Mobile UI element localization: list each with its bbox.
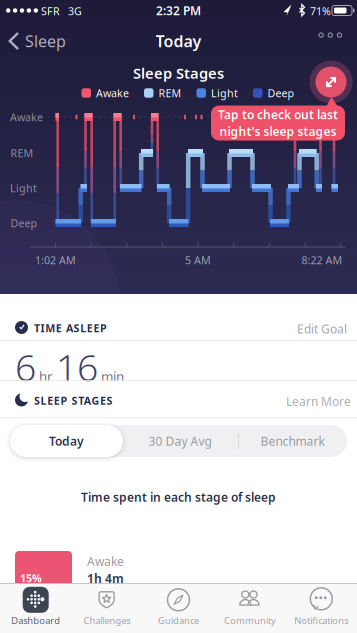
staticText: Light xyxy=(10,181,37,195)
staticText: 30 Day Avg xyxy=(148,433,211,449)
staticText: 71% xyxy=(310,4,331,18)
staticText: Awake xyxy=(96,86,129,100)
staticText: Sleep xyxy=(25,30,66,52)
staticText: hr xyxy=(39,367,53,385)
button[interactable]: Notifications xyxy=(286,583,357,633)
staticText: Community xyxy=(224,614,276,627)
staticText: SFR xyxy=(41,4,60,18)
staticText: 1:02 AM xyxy=(35,253,76,267)
button[interactable]: Challenges xyxy=(71,583,143,633)
staticText: Awake xyxy=(87,553,124,569)
staticText: 16 xyxy=(56,342,98,392)
button[interactable]: Sleep xyxy=(0,25,72,57)
staticText: Dashboard xyxy=(11,614,60,627)
staticText: Benchmark xyxy=(260,433,324,449)
staticText: 3G xyxy=(68,4,82,18)
button[interactable]: Benchmark xyxy=(238,425,347,457)
staticText: 2:32 PM xyxy=(156,2,201,18)
staticText: Deep xyxy=(10,216,37,230)
button[interactable]: Guidance xyxy=(143,583,214,633)
staticText: Time spent in each stage of sleep xyxy=(81,489,276,505)
staticText: REM xyxy=(10,146,33,160)
button[interactable]: Tap to check out last xyxy=(211,105,345,140)
button[interactable]: Today xyxy=(10,425,123,457)
staticText: Awake xyxy=(10,110,43,124)
staticText: Today xyxy=(155,30,201,52)
button[interactable] xyxy=(315,66,346,97)
staticText: 1h 4m xyxy=(87,570,124,586)
staticText: TIME ASLEEP xyxy=(34,321,107,335)
staticText: Edit Goal xyxy=(297,321,347,337)
button[interactable]: Community xyxy=(214,583,286,633)
staticText: Today xyxy=(49,433,84,449)
staticText: Sleep Stages xyxy=(133,63,224,83)
staticText: Challenges xyxy=(84,614,131,627)
staticText: min xyxy=(101,367,124,385)
staticText: 8:22 AM xyxy=(301,253,342,267)
button[interactable]: Learn More xyxy=(282,387,355,415)
staticText: Deep xyxy=(267,86,294,100)
staticText: 15% xyxy=(20,571,42,585)
button[interactable] xyxy=(311,25,350,45)
staticText: Notifications xyxy=(294,614,348,627)
staticText: SLEEP STAGES xyxy=(34,393,113,408)
button[interactable]: 30 Day Avg xyxy=(123,425,237,457)
staticText: night's sleep stages xyxy=(219,123,336,139)
staticText: Tap to check out last xyxy=(218,107,338,122)
button[interactable]: Dashboard xyxy=(0,583,71,633)
button[interactable]: Edit Goal xyxy=(293,315,351,343)
staticText: Light xyxy=(211,86,238,100)
staticText: REM xyxy=(158,86,181,100)
staticText: 5 AM xyxy=(185,253,211,267)
staticText: Learn More xyxy=(286,393,351,409)
staticText: 6 xyxy=(15,342,36,392)
staticText: Guidance xyxy=(158,614,199,627)
